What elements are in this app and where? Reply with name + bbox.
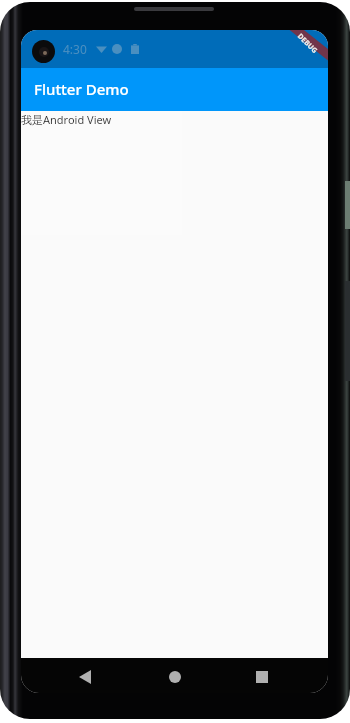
button[interactable]: Back	[68, 660, 102, 693]
button[interactable]: Recent apps	[245, 660, 279, 693]
staticText: 我是Android View	[21, 112, 112, 127]
staticText: 4:30	[63, 41, 87, 57]
staticText: Flutter Demo	[34, 79, 129, 99]
staticText: DEBUG	[295, 32, 320, 56]
button[interactable]: Flutter Demo	[21, 68, 328, 111]
button[interactable]: Home	[158, 660, 192, 693]
